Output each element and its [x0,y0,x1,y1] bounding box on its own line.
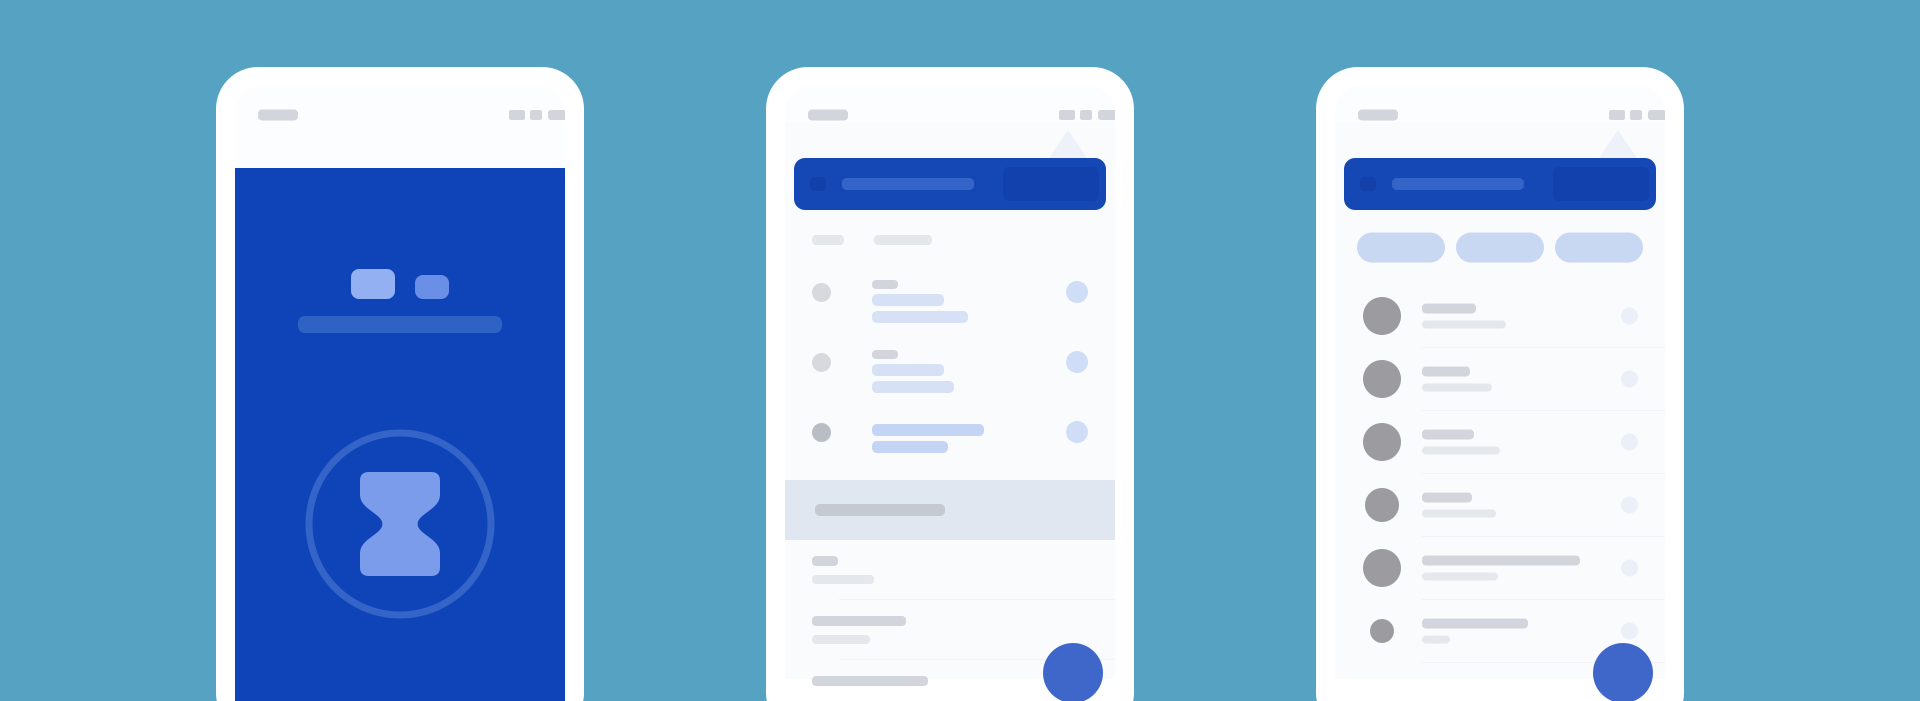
button[interactable]: Search [1344,158,1656,210]
button[interactable]: Compose [1043,643,1103,701]
button[interactable] [1335,348,1665,411]
button[interactable]: Add contact [1593,643,1653,701]
button[interactable] [1357,232,1445,262]
button[interactable] [785,270,1115,340]
button[interactable] [1456,232,1544,262]
button[interactable] [1335,411,1665,474]
button[interactable] [785,540,1115,600]
button[interactable] [785,340,1115,410]
button[interactable] [1335,285,1665,348]
button[interactable] [1335,537,1665,600]
button[interactable] [785,660,1115,701]
button[interactable] [1555,232,1643,262]
button[interactable] [785,600,1115,660]
button[interactable] [1335,600,1665,663]
button[interactable] [1335,474,1665,537]
button[interactable] [785,410,1115,480]
button[interactable]: Search [794,158,1106,210]
